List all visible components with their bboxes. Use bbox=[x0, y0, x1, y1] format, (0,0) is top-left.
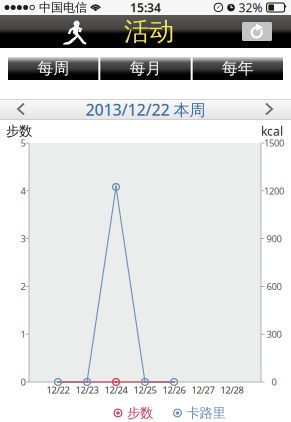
staticText: 15:34 bbox=[130, 0, 161, 15]
button[interactable]: 下一周 bbox=[247, 99, 291, 120]
staticText: 12/24 bbox=[104, 384, 127, 396]
button[interactable]: 每年 bbox=[193, 57, 283, 80]
staticText: 1 bbox=[20, 328, 25, 340]
staticText: 步数 bbox=[6, 123, 32, 139]
staticText: kcal bbox=[261, 123, 283, 139]
staticText: 12/27 bbox=[191, 384, 214, 396]
staticText: 每年 bbox=[222, 59, 254, 78]
staticText: 12/28 bbox=[220, 384, 243, 396]
staticText: 3 bbox=[20, 232, 25, 245]
staticText: 步数 bbox=[127, 405, 153, 421]
staticText: 0 bbox=[20, 376, 25, 388]
staticText: 2 bbox=[20, 280, 25, 293]
button[interactable]: 2013/12/22 本周 bbox=[85, 99, 205, 120]
staticText: 4 bbox=[20, 185, 25, 197]
staticText: 600 bbox=[266, 280, 281, 293]
button[interactable]: 刷新 bbox=[242, 22, 272, 41]
staticText: 1500 bbox=[264, 137, 284, 149]
staticText: 每月 bbox=[129, 59, 161, 78]
staticText: 2013/12/22 本周 bbox=[85, 99, 205, 120]
staticText: 卡路里 bbox=[186, 405, 225, 421]
button[interactable]: 步数 bbox=[113, 405, 153, 421]
button[interactable]: 上一周 bbox=[0, 99, 44, 120]
staticText: 32% bbox=[239, 0, 263, 15]
staticText: 0 bbox=[271, 376, 276, 388]
staticText: 12/25 bbox=[133, 384, 156, 396]
staticText: 12/26 bbox=[162, 384, 185, 396]
staticText: 1200 bbox=[264, 185, 284, 197]
staticText: 活动 bbox=[124, 16, 174, 47]
staticText: 900 bbox=[266, 232, 281, 245]
button[interactable]: 卡路里 bbox=[172, 405, 225, 421]
staticText: 12/23 bbox=[75, 384, 98, 396]
button[interactable]: 每月 bbox=[100, 57, 191, 80]
button[interactable]: 每周 bbox=[8, 57, 98, 80]
staticText: 中国电信 bbox=[39, 0, 87, 15]
staticText: 每周 bbox=[37, 59, 69, 78]
staticText: 5 bbox=[20, 137, 25, 149]
staticText: 300 bbox=[266, 328, 281, 340]
staticText: 12/22 bbox=[46, 384, 69, 396]
